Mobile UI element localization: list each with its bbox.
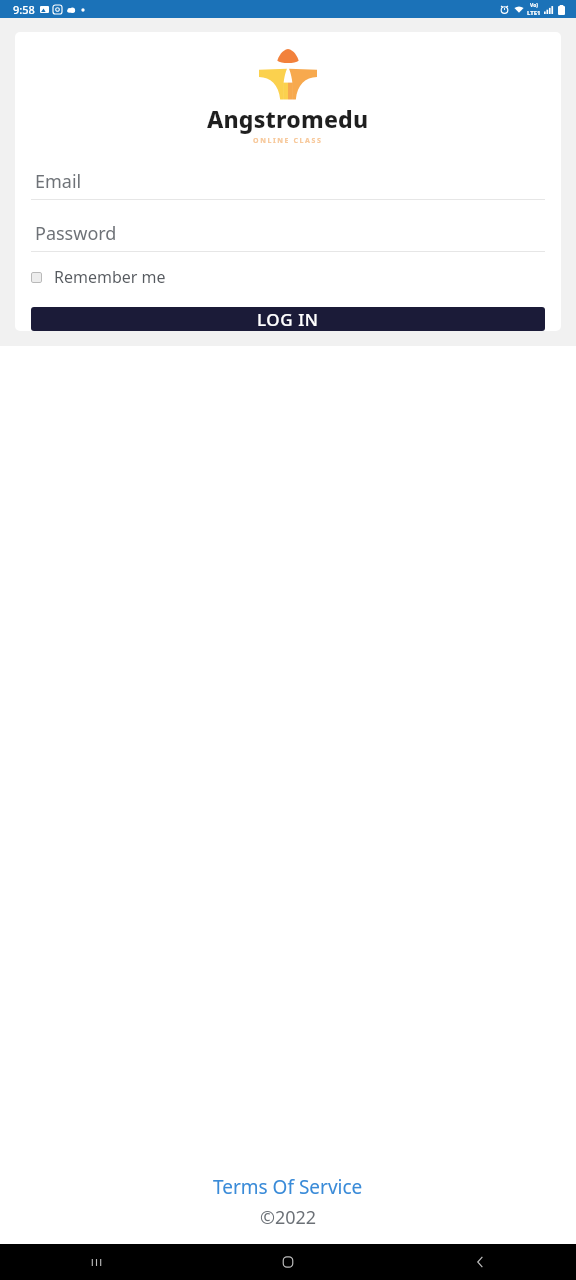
button[interactable]: LOG IN	[31, 307, 545, 331]
button[interactable]: Remember me	[31, 266, 545, 288]
staticText: Vo)	[530, 2, 538, 9]
staticText: ONLINE CLASS	[253, 136, 323, 146]
staticText: 9:58	[13, 2, 35, 17]
button[interactable]: Password	[31, 220, 545, 252]
staticText: Terms Of Service	[213, 1174, 363, 1200]
staticText: LTE1	[527, 9, 541, 17]
button[interactable]: Back	[384, 1244, 576, 1280]
staticText: Email	[35, 169, 82, 194]
staticText: LOG IN	[257, 308, 319, 331]
button[interactable]: Email	[31, 168, 545, 200]
button[interactable]: Recents	[0, 1244, 192, 1280]
button[interactable]: Terms Of Service	[205, 1172, 371, 1202]
button[interactable]: Home	[192, 1244, 384, 1280]
staticText: Password	[35, 221, 117, 246]
staticText: Remember me	[54, 266, 166, 288]
staticText: ©2022	[260, 1205, 317, 1230]
staticText: Angstromedu	[207, 103, 369, 134]
